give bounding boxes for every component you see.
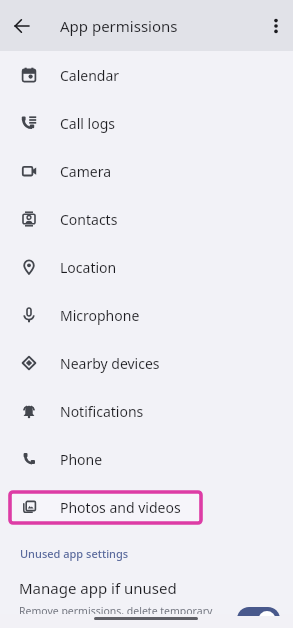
staticText: Nearby devices — [60, 354, 160, 373]
staticText: Phone — [60, 450, 103, 469]
staticText: Remove permissions, delete temporary — [19, 604, 213, 618]
button[interactable] — [259, 9, 292, 42]
button[interactable] — [237, 606, 281, 616]
button[interactable]: Notifications — [0, 387, 293, 435]
staticText: App permissions — [60, 16, 178, 36]
staticText: Contacts — [60, 210, 118, 229]
button[interactable]: Call logs — [0, 99, 293, 147]
staticText: Call logs — [60, 114, 115, 133]
button[interactable]: Location — [0, 243, 293, 291]
staticText: Location — [60, 258, 117, 277]
staticText: Camera — [60, 162, 112, 181]
button[interactable]: Phone — [0, 435, 293, 483]
button[interactable]: Contacts — [0, 195, 293, 243]
staticText: Calendar — [60, 66, 120, 85]
button[interactable] — [0, 4, 44, 48]
button[interactable]: Camera — [0, 147, 293, 195]
button[interactable]: Photos and videos — [0, 483, 293, 531]
staticText: Photos and videos — [60, 498, 181, 517]
button[interactable]: Manage app if unused — [0, 561, 293, 618]
button[interactable]: Microphone — [0, 291, 293, 339]
staticText: Manage app if unused — [19, 578, 177, 598]
button[interactable]: Calendar — [0, 51, 293, 99]
staticText: Notifications — [60, 402, 144, 421]
button[interactable]: Nearby devices — [0, 339, 293, 387]
staticText: Unused app settings — [20, 546, 129, 561]
staticText: Microphone — [60, 306, 140, 325]
